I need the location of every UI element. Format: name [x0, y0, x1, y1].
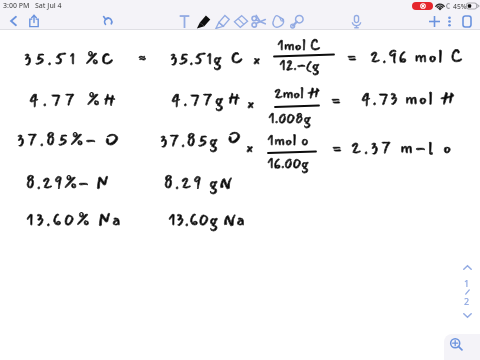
staticText: 2 [464, 295, 470, 307]
staticText: = [347, 45, 357, 69]
staticText: 1mol C [277, 34, 321, 57]
staticText: 45% [453, 2, 467, 11]
button[interactable]: Page navigator 1 of 2 [457, 265, 477, 321]
staticText: x [253, 47, 261, 71]
staticText: x [246, 135, 254, 159]
staticText: C [231, 45, 243, 71]
staticText: x [247, 91, 255, 115]
button[interactable]: Hand tool [269, 12, 287, 30]
staticText: C [231, 45, 243, 71]
button[interactable]: Eraser [232, 12, 250, 30]
button[interactable]: Record audio [348, 12, 364, 30]
staticText: 12.-(g [279, 54, 320, 77]
button[interactable]: Recording [412, 2, 433, 10]
staticText: 4.77g [171, 87, 226, 113]
button[interactable]: Pen [194, 12, 212, 30]
staticText: 35.51 %C [24, 46, 117, 72]
staticText: H [228, 86, 241, 112]
staticText: 2.96 mol C [370, 44, 465, 70]
staticText: = [332, 136, 342, 160]
staticText: O [228, 126, 241, 150]
button[interactable]: Lasso select [250, 12, 268, 30]
staticText: 37.85%- O [17, 127, 122, 153]
staticText: 16.00g [267, 152, 309, 175]
staticText: 13.60g Na [168, 207, 246, 233]
staticText: 13.60% Na [26, 207, 123, 233]
staticText: 4.73 mol H [361, 86, 457, 112]
button[interactable]: More options [443, 12, 456, 30]
staticText: 2.37 m-l o [351, 135, 454, 161]
staticText: 4.77 %H [29, 87, 121, 113]
staticText: 8.29 gN [164, 170, 235, 196]
staticText: 1mol C [277, 34, 321, 57]
staticText: 4.73 mol H [361, 86, 457, 112]
staticText: 8.29%- N [26, 170, 110, 196]
button[interactable]: Back [5, 12, 21, 30]
staticText: 3:00 PM [3, 1, 30, 11]
staticText: 35.51 %C [24, 46, 117, 72]
staticText: 2.37 m-l o [351, 135, 454, 161]
staticText: 1mol o [267, 129, 310, 152]
staticText: 35.51g [170, 46, 223, 72]
button[interactable]: Add [426, 12, 442, 30]
button[interactable]: Shape tool [288, 12, 306, 30]
staticText: 2mol H [274, 82, 320, 105]
staticText: 1.008g [268, 107, 311, 130]
staticText: H [228, 86, 241, 112]
staticText: 8.29 gN [164, 170, 235, 196]
staticText: O [228, 126, 241, 150]
staticText: 8.29%- N [26, 170, 110, 196]
staticText: = [331, 88, 341, 112]
staticText: 2mol H [274, 82, 320, 105]
staticText: 4.77 %H [29, 87, 121, 113]
staticText: 13.60% Na [26, 207, 123, 233]
staticText: x [246, 135, 254, 159]
staticText: 12.-(g [279, 54, 320, 77]
staticText: 37.85g [160, 128, 220, 154]
staticText: = [331, 88, 341, 112]
staticText: 16.00g [267, 152, 309, 175]
button[interactable]: Undo [100, 12, 116, 30]
staticText: = [347, 45, 357, 69]
staticText: = [332, 136, 342, 160]
staticText: ≈ [138, 46, 147, 70]
staticText: 35.51g [170, 46, 223, 72]
staticText: 13.60g Na [168, 207, 246, 233]
staticText: x [247, 91, 255, 115]
staticText: 37.85%- O [17, 127, 122, 153]
staticText: ≈ [138, 46, 147, 70]
button[interactable]: Text tool [176, 12, 192, 30]
staticText: 2.96 mol C [370, 44, 465, 70]
staticText: x [253, 47, 261, 71]
button[interactable]: Share [26, 12, 42, 30]
staticText: 37.85g [160, 128, 220, 154]
staticText: 4.77g [171, 87, 226, 113]
staticText: 1 [464, 277, 470, 289]
staticText: 1.008g [268, 107, 311, 130]
button[interactable]: Highlighter [213, 12, 231, 30]
button[interactable]: Zoom [444, 334, 480, 360]
staticText: Sat Jul 4 [35, 1, 62, 11]
staticText: 1mol o [267, 129, 310, 152]
button[interactable]: Pages [459, 12, 475, 30]
